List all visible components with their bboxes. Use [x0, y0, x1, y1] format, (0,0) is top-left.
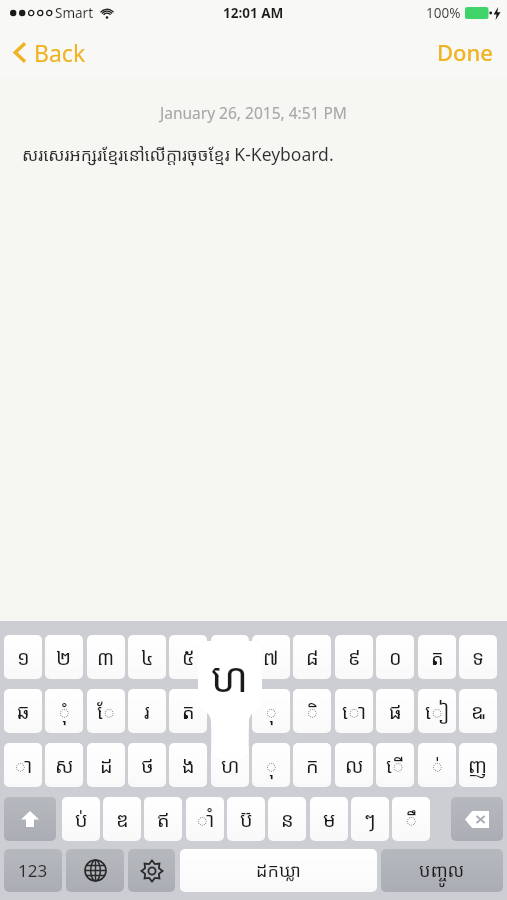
- button[interactable]: ិ: [293, 689, 331, 733]
- staticText: ផ: [389, 698, 402, 725]
- button[interactable]: ឥ: [144, 797, 182, 841]
- button[interactable]: យ: [211, 689, 249, 733]
- staticText: ត: [182, 698, 195, 725]
- staticText: Done: [437, 37, 493, 67]
- button[interactable]: ថ: [128, 743, 166, 787]
- staticText: ដកឃ្លា: [256, 858, 301, 883]
- staticText: ម: [323, 806, 336, 833]
- button[interactable]: Backspace: [451, 797, 503, 841]
- button[interactable]: ៨: [293, 635, 331, 679]
- button[interactable]: ៣: [87, 635, 125, 679]
- button[interactable]: ល: [335, 743, 373, 787]
- button[interactable]: ៀ: [418, 689, 456, 733]
- button[interactable]: Shift: [4, 797, 56, 841]
- button[interactable]: ហ: [211, 743, 249, 787]
- staticText: ប៊: [240, 806, 253, 833]
- staticText: ើ: [386, 752, 405, 779]
- staticText: ៣: [97, 644, 115, 671]
- staticText: ុំ: [58, 698, 71, 725]
- button[interactable]: Done: [423, 29, 507, 75]
- staticText: ែ: [97, 698, 116, 725]
- staticText: January 26, 2015, 4:51 PM: [160, 102, 347, 123]
- button[interactable]: ឌ: [103, 797, 141, 841]
- staticText: ទ: [472, 644, 484, 671]
- staticText: 12:01 AM: [223, 4, 284, 22]
- staticText: ៀ: [425, 698, 450, 725]
- button[interactable]: រ: [128, 689, 166, 733]
- button[interactable]: ៗ: [351, 797, 389, 841]
- staticText: ថ: [141, 752, 154, 779]
- button[interactable]: ៦: [211, 635, 249, 679]
- button[interactable]: ប៊: [227, 797, 265, 841]
- button[interactable]: ់: [418, 743, 456, 787]
- button[interactable]: ុ: [252, 689, 290, 733]
- staticText: ុ: [265, 752, 278, 779]
- staticText: 123: [18, 859, 48, 882]
- button[interactable]: ុ: [252, 743, 290, 787]
- button[interactable]: ដ: [87, 743, 125, 787]
- button[interactable]: Back: [0, 31, 102, 74]
- button[interactable]: ា: [4, 743, 42, 787]
- button[interactable]: ោ: [335, 689, 373, 733]
- staticText: សរសេរអក្សរខ្មែរនៅលើក្តារចុចខ្មែរ K-Keybo…: [22, 142, 334, 166]
- button[interactable]: ១: [4, 635, 42, 679]
- staticText: ាំ: [196, 806, 215, 833]
- button[interactable]: ត: [418, 635, 456, 679]
- button[interactable]: ទ: [459, 635, 497, 679]
- button[interactable]: ៥: [169, 635, 207, 679]
- button[interactable]: ម: [310, 797, 348, 841]
- button[interactable]: បញ្ចូល: [381, 849, 503, 892]
- button[interactable]: ០: [376, 635, 414, 679]
- button[interactable]: 123: [4, 849, 62, 892]
- button[interactable]: ផ: [376, 689, 414, 733]
- staticText: ១: [17, 644, 30, 671]
- staticText: ់: [431, 752, 444, 779]
- staticText: ិ: [306, 698, 319, 725]
- button[interactable]: ង: [169, 743, 207, 787]
- button[interactable]: ុំ: [45, 689, 83, 733]
- button[interactable]: ២: [45, 635, 83, 679]
- button[interactable]: ៩: [335, 635, 373, 679]
- button[interactable]: Change keyboard language: [66, 849, 124, 892]
- staticText: ប់: [75, 806, 88, 833]
- staticText: ន: [281, 806, 294, 833]
- button[interactable]: ែ: [87, 689, 125, 733]
- staticText: ឥ: [157, 806, 170, 833]
- button[interactable]: ឹ: [392, 797, 430, 841]
- button[interactable]: ញ: [459, 743, 497, 787]
- button[interactable]: ៧: [252, 635, 290, 679]
- staticText: ស: [55, 752, 74, 779]
- button[interactable]: ៤: [128, 635, 166, 679]
- button[interactable]: ដកឃ្លា: [180, 849, 377, 892]
- button[interactable]: ស: [45, 743, 83, 787]
- staticText: ឹ: [405, 806, 418, 833]
- staticText: ៧: [263, 644, 279, 671]
- button[interactable]: ន: [268, 797, 306, 841]
- staticText: ២: [56, 644, 72, 671]
- button[interactable]: ឆ: [4, 689, 42, 733]
- staticText: ល: [345, 752, 364, 779]
- staticText: ោ: [342, 698, 367, 725]
- staticText: Smart: [55, 4, 94, 22]
- staticText: ុ: [265, 698, 278, 725]
- staticText: ៨: [306, 644, 319, 671]
- staticText: ញ: [468, 752, 488, 779]
- staticText: ០: [389, 644, 402, 671]
- button[interactable]: ាំ: [186, 797, 224, 841]
- button[interactable]: ើ: [376, 743, 414, 787]
- staticText: ត: [431, 644, 444, 671]
- button[interactable]: ក: [293, 743, 331, 787]
- button[interactable]: ត: [169, 689, 207, 733]
- button[interactable]: ប់: [62, 797, 100, 841]
- staticText: រ: [144, 698, 150, 725]
- staticText: ៗ: [364, 806, 376, 833]
- button[interactable]: ឩ: [459, 689, 497, 733]
- button[interactable]: Settings: [128, 849, 175, 892]
- staticText: 100%: [426, 4, 461, 22]
- staticText: ៤: [141, 644, 154, 671]
- staticText: ដ: [100, 752, 113, 779]
- staticText: ឌ: [116, 806, 129, 833]
- staticText: ក: [306, 752, 319, 779]
- staticText: ឩ: [471, 698, 486, 725]
- staticText: Back: [34, 37, 86, 68]
